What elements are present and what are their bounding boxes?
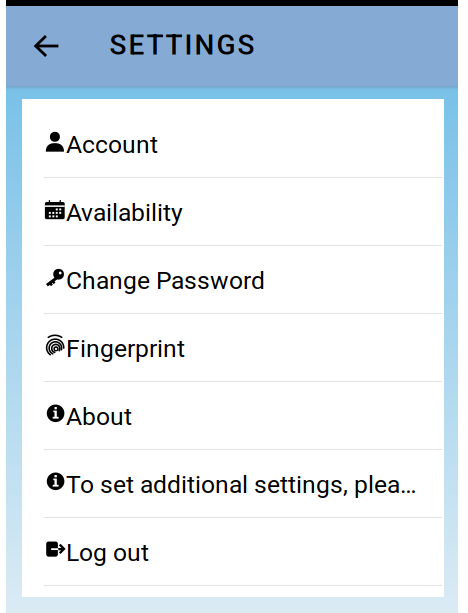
button[interactable]: Availability xyxy=(22,178,444,246)
button[interactable]: Change Password xyxy=(22,246,444,314)
staticText: Log out xyxy=(66,538,149,567)
staticText: SETTINGS xyxy=(109,29,254,61)
staticText: About xyxy=(66,402,132,431)
button[interactable]: To set additional settings, please conta… xyxy=(22,450,444,518)
button[interactable]: Back xyxy=(15,14,77,78)
staticText: Change Password xyxy=(66,266,265,295)
staticText: Fingerprint xyxy=(66,334,185,363)
button[interactable]: About xyxy=(22,382,444,450)
staticText: Availability xyxy=(66,198,183,227)
staticText: To set additional settings, please conta… xyxy=(66,470,418,499)
button[interactable]: Account xyxy=(22,110,444,178)
button[interactable]: Fingerprint xyxy=(22,314,444,382)
staticText: Account xyxy=(66,130,158,159)
button[interactable]: Log out xyxy=(22,518,444,586)
